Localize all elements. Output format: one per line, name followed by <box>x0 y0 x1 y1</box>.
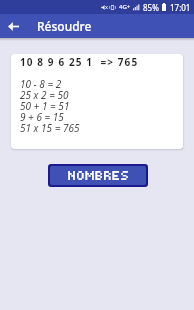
staticText: 10 - 8 = 2 25 x 2 = 50 50 + 1 = 51 9 + 6… <box>20 77 80 135</box>
button[interactable]: Back <box>0 14 26 38</box>
staticText: 10 8 9 6 25 1 => 765 <box>20 55 139 69</box>
staticText: 85% <box>143 2 159 13</box>
staticText: 4G+ <box>119 3 131 11</box>
staticText: NOMBRES <box>68 169 130 184</box>
staticText: Résoudre <box>37 18 92 34</box>
staticText: 17:01 <box>170 2 191 13</box>
button[interactable]: NOMBRES <box>50 166 146 185</box>
